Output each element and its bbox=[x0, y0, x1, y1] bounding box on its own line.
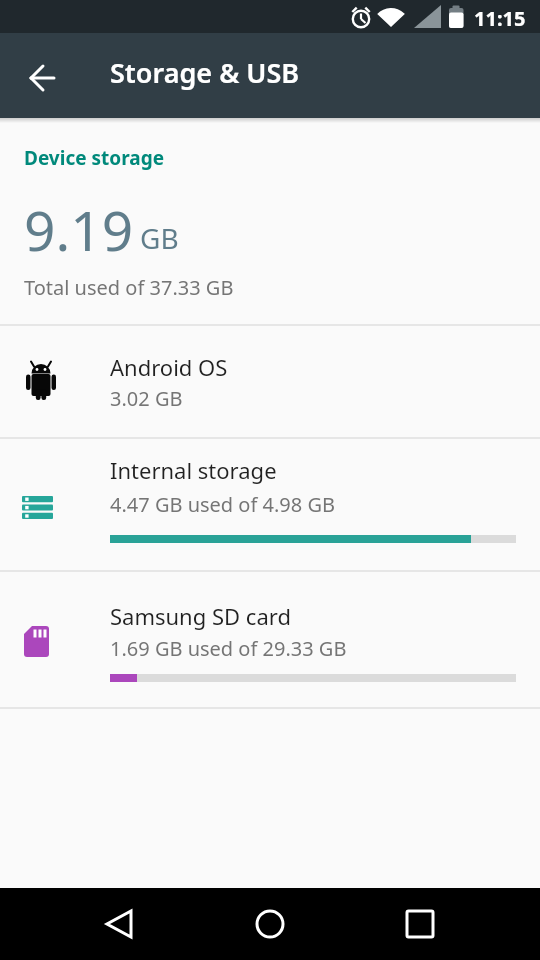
staticText: GB bbox=[140, 219, 179, 257]
staticText: 9.19 bbox=[24, 192, 134, 267]
button[interactable]: Android OS bbox=[0, 324, 540, 437]
staticText: Device storage bbox=[24, 145, 164, 171]
staticText: 1.69 GB used of 29.33 GB bbox=[110, 635, 347, 662]
staticText: Samsung SD card bbox=[110, 601, 291, 631]
button[interactable] bbox=[396, 900, 444, 948]
staticText: Internal storage bbox=[110, 455, 277, 485]
staticText: Android OS bbox=[110, 352, 228, 382]
staticText: 3.02 GB bbox=[110, 385, 183, 412]
staticText: Total used of 37.33 GB bbox=[24, 274, 234, 301]
button[interactable] bbox=[246, 900, 294, 948]
button[interactable] bbox=[18, 54, 66, 102]
button[interactable]: Internal storage bbox=[0, 438, 540, 570]
staticText: 11:15 bbox=[474, 5, 526, 32]
button[interactable] bbox=[96, 900, 144, 948]
staticText: 4.47 GB used of 4.98 GB bbox=[110, 491, 335, 518]
button[interactable]: Samsung SD card bbox=[0, 571, 540, 707]
staticText: Storage & USB bbox=[110, 54, 300, 91]
